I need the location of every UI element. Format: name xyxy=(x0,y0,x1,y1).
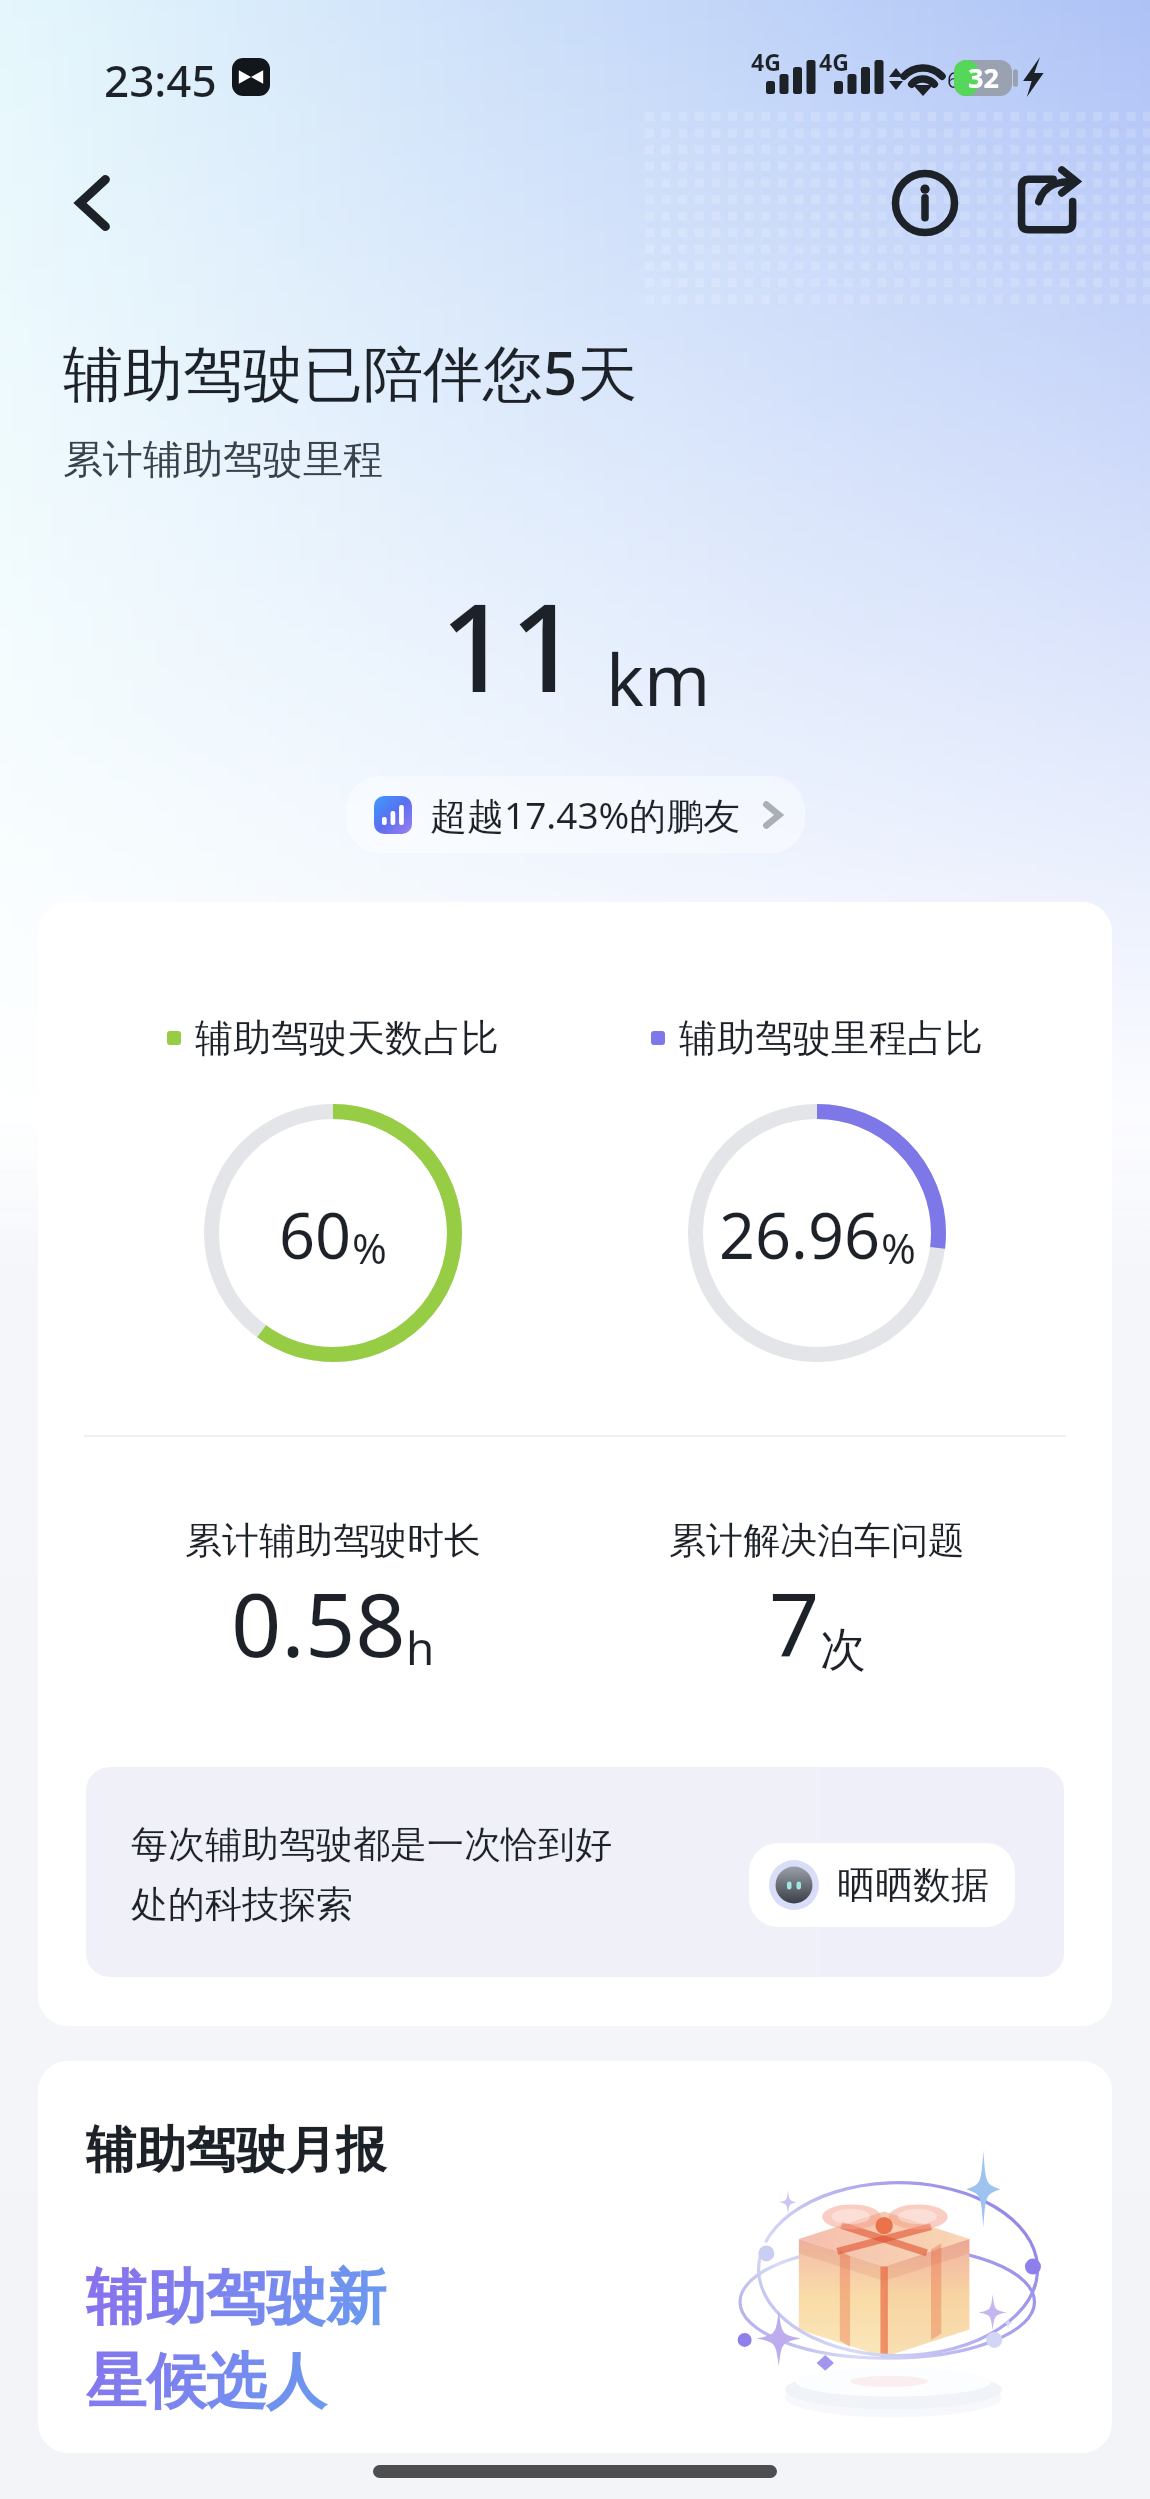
staticText: 11 xyxy=(440,562,580,728)
button[interactable]: Info xyxy=(889,167,961,239)
staticText: 26.96 xyxy=(719,1192,881,1278)
staticText: h xyxy=(406,1616,435,1679)
button[interactable]: Back xyxy=(62,172,124,234)
staticText: 60 xyxy=(279,1192,352,1278)
staticText: % xyxy=(352,1219,387,1276)
button[interactable]: 超越17.43%的鹏友 xyxy=(346,776,805,853)
button[interactable]: 辅助驾驶月报 xyxy=(38,2061,1112,2453)
staticText: 每次辅助驾驶都是一次恰到好 xyxy=(131,1821,612,1868)
staticText: 累计辅助驾驶时长 xyxy=(185,1517,481,1564)
button[interactable]: 晒晒数据 xyxy=(749,1843,1015,1927)
staticText: 辅助驾驶里程占比 xyxy=(679,1014,983,1062)
staticText: 超越17.43%的鹏友 xyxy=(430,789,741,840)
staticText: 累计解决泊车问题 xyxy=(669,1517,965,1564)
staticText: 0.58 xyxy=(231,1563,406,1683)
staticText: 辅助驾驶月报 xyxy=(86,2119,386,2182)
staticText: 23:45 xyxy=(104,50,217,110)
staticText: 4G xyxy=(751,46,781,77)
staticText: 辅助驾驶新 星候选人 xyxy=(86,2260,386,2420)
staticText: 辅助驾驶天数占比 xyxy=(195,1014,499,1062)
staticText: 6 xyxy=(947,64,960,94)
staticText: 辅助驾驶已陪伴您5天 xyxy=(63,331,638,413)
staticText: km xyxy=(606,630,711,727)
staticText: 32 xyxy=(968,59,999,95)
staticText: 7 xyxy=(769,1563,820,1683)
staticText: 4G xyxy=(819,46,849,77)
staticText: 处的科技探索 xyxy=(131,1881,353,1928)
staticText: 累计辅助驾驶里程 xyxy=(63,434,383,484)
button[interactable]: Share xyxy=(1010,167,1082,239)
staticText: % xyxy=(881,1219,916,1276)
staticText: 晒晒数据 xyxy=(837,1861,989,1909)
staticText: 次 xyxy=(820,1621,866,1679)
